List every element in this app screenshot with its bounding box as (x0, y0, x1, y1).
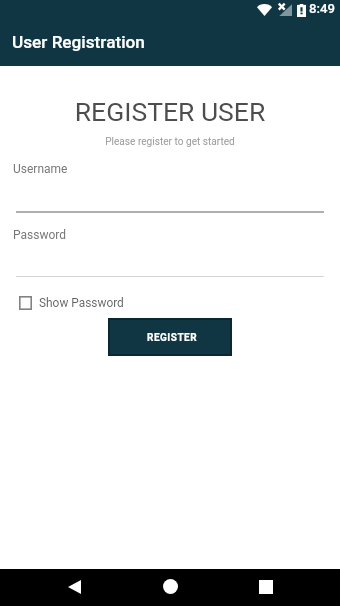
staticText: Password (13, 228, 67, 242)
staticText: User Registration (12, 32, 145, 52)
staticText: 8:49 (309, 1, 335, 16)
staticText: Please register to get started (0, 136, 340, 148)
button[interactable]: Back (46, 568, 103, 605)
staticText: REGISTER (147, 332, 198, 344)
staticText: Username (13, 162, 68, 176)
button[interactable]: REGISTER (110, 320, 230, 354)
staticText: REGISTER USER (0, 96, 340, 127)
button[interactable]: Recent apps (237, 568, 294, 605)
staticText: Show Password (39, 296, 124, 310)
button[interactable]: Show Password (19, 296, 124, 310)
button[interactable]: Home (142, 568, 199, 605)
